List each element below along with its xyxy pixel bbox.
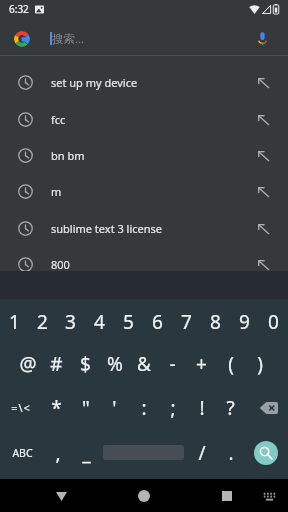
button[interactable]: Use this suggestion xyxy=(252,218,274,240)
button[interactable]: fcc xyxy=(0,101,288,138)
staticText: bn bm xyxy=(51,148,85,163)
staticText: 7 xyxy=(181,309,192,335)
button[interactable]: Recent apps xyxy=(211,480,243,512)
button[interactable]: / xyxy=(186,431,217,474)
button[interactable]: Use this suggestion xyxy=(252,145,274,167)
staticText: , xyxy=(55,440,61,466)
button[interactable]: _ xyxy=(71,431,102,474)
staticText: 4 xyxy=(94,309,105,335)
staticText: ; xyxy=(170,395,176,421)
button[interactable]: ( xyxy=(216,342,245,385)
button[interactable]: # xyxy=(42,342,71,385)
staticText: $ xyxy=(80,351,91,377)
button[interactable]: 4 xyxy=(85,300,114,343)
button[interactable]: + xyxy=(187,342,216,385)
staticText: =\< xyxy=(11,400,31,415)
button[interactable]: Back xyxy=(45,480,77,512)
button[interactable]: & xyxy=(129,342,158,385)
button[interactable]: Switch keyboard xyxy=(253,480,285,512)
staticText: ! xyxy=(199,395,205,421)
staticText: ' xyxy=(112,395,117,421)
button[interactable]: ABC xyxy=(0,431,44,474)
staticText: fcc xyxy=(51,112,66,127)
button[interactable]: * xyxy=(42,385,71,430)
button[interactable]: @ xyxy=(13,342,42,385)
button[interactable]: ' xyxy=(100,385,129,430)
staticText: 0 xyxy=(268,309,279,335)
button[interactable]: ) xyxy=(245,342,274,385)
button[interactable]: 3 xyxy=(56,300,85,343)
staticText: 1 xyxy=(9,309,20,335)
staticText: m xyxy=(51,184,62,199)
staticText: " xyxy=(82,395,90,421)
button[interactable]: Voice search xyxy=(251,27,274,50)
staticText: # xyxy=(50,351,63,377)
button[interactable]: 1 xyxy=(0,300,28,343)
button[interactable]: bn bm xyxy=(0,137,288,174)
staticText: - xyxy=(169,351,176,377)
button[interactable]: =\< xyxy=(0,385,42,430)
button[interactable]: 5 xyxy=(114,300,143,343)
button[interactable]: 9 xyxy=(230,300,259,343)
button[interactable]: : xyxy=(129,385,158,430)
staticText: & xyxy=(137,351,151,377)
button[interactable]: m xyxy=(0,173,288,210)
button[interactable]: 7 xyxy=(172,300,201,343)
staticText: / xyxy=(198,440,206,466)
staticText: 800 xyxy=(51,257,70,271)
staticText: 9 xyxy=(239,309,250,335)
staticText: _ xyxy=(82,440,91,466)
button[interactable]: $ xyxy=(71,342,100,385)
staticText: ) xyxy=(257,351,263,377)
staticText: ( xyxy=(228,351,234,377)
button[interactable]: , xyxy=(44,431,71,474)
staticText: . xyxy=(228,440,234,466)
button[interactable]: " xyxy=(71,385,100,430)
button[interactable]: 0 xyxy=(259,300,288,343)
staticText: ABC xyxy=(12,446,33,460)
staticText: 5 xyxy=(123,309,134,335)
staticText: 6:32 xyxy=(9,2,29,16)
button[interactable]: Use this suggestion xyxy=(252,254,274,271)
button[interactable]: ! xyxy=(187,385,216,430)
button[interactable]: 800 xyxy=(0,246,288,271)
button[interactable]: Use this suggestion xyxy=(252,109,274,131)
button[interactable]: Backspace xyxy=(247,385,288,430)
staticText: 搜索… xyxy=(52,31,85,47)
staticText: 8 xyxy=(210,309,221,335)
staticText: sublime text 3 license xyxy=(51,221,163,236)
button[interactable]: Search xyxy=(254,441,278,465)
button[interactable]: set up my device xyxy=(0,64,288,101)
button[interactable]: Home xyxy=(128,480,160,512)
staticText: 2 xyxy=(37,309,48,335)
staticText: % xyxy=(107,351,123,377)
staticText: 3 xyxy=(65,309,76,335)
staticText: 6 xyxy=(152,309,163,335)
button[interactable]: 2 xyxy=(28,300,56,343)
staticText: @ xyxy=(19,351,37,377)
button[interactable]: ? xyxy=(216,385,245,430)
button[interactable]: 8 xyxy=(201,300,230,343)
button[interactable]: ; xyxy=(158,385,187,430)
button[interactable]: . xyxy=(217,431,244,474)
staticText: * xyxy=(51,395,62,421)
button[interactable]: sublime text 3 license xyxy=(0,210,288,247)
staticText: : xyxy=(141,395,147,421)
button[interactable]: - xyxy=(158,342,187,385)
button[interactable]: 6 xyxy=(143,300,172,343)
button[interactable]: Use this suggestion xyxy=(252,181,274,203)
staticText: + xyxy=(196,351,207,377)
button[interactable]: % xyxy=(100,342,129,385)
staticText: ? xyxy=(226,395,235,421)
button[interactable]: Use this suggestion xyxy=(252,72,274,94)
staticText: set up my device xyxy=(51,75,138,90)
